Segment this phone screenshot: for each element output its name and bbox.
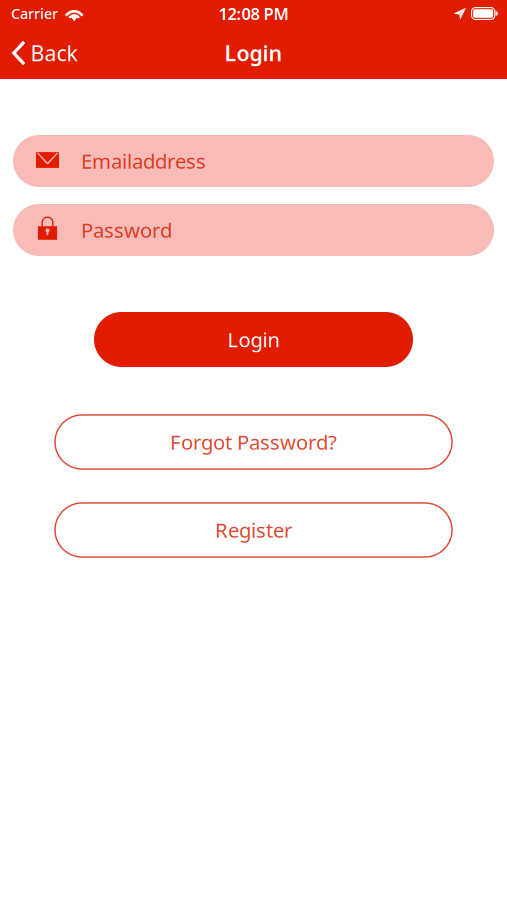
staticText: Carrier bbox=[11, 4, 58, 23]
staticText: 12:08 PM bbox=[218, 2, 288, 25]
button[interactable]: Login bbox=[94, 312, 413, 367]
button[interactable]: Back bbox=[0, 27, 88, 79]
button[interactable]: Password bbox=[13, 204, 494, 256]
button[interactable]: Emailaddress bbox=[13, 135, 494, 187]
staticText: Emailaddress bbox=[81, 147, 206, 175]
staticText: Forgot Password? bbox=[170, 428, 337, 456]
staticText: Password bbox=[81, 216, 172, 244]
button[interactable]: Register bbox=[55, 503, 452, 557]
staticText: Register bbox=[215, 516, 292, 544]
button[interactable]: Forgot Password? bbox=[55, 415, 452, 469]
staticText: Back bbox=[31, 39, 78, 67]
staticText: Login bbox=[224, 39, 282, 67]
staticText: Login bbox=[227, 326, 279, 353]
